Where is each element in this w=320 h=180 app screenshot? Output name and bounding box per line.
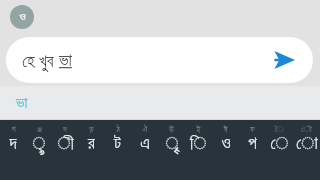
staticText: ভা (16, 96, 28, 111)
button[interactable]: ঊ (158, 120, 185, 180)
button[interactable]: ঐ (131, 120, 158, 180)
staticText: প (248, 135, 257, 152)
button[interactable]: Send (267, 43, 301, 77)
staticText: ঞ্জ (37, 126, 42, 134)
button[interactable]: Profile (10, 5, 34, 29)
button[interactable]: ৌ (293, 120, 320, 180)
staticText: ি (190, 135, 207, 152)
staticText: ঈ (223, 126, 228, 134)
staticText: ট (114, 135, 121, 152)
staticText: দ (9, 135, 17, 152)
button[interactable]: ফ (239, 120, 266, 180)
staticText: ই (196, 126, 201, 134)
staticText: এ (140, 135, 150, 152)
staticText: ৄ (165, 135, 179, 152)
staticText: ৌ (301, 126, 312, 134)
staticText: ভা (59, 52, 72, 69)
button[interactable]: শ (0, 120, 26, 180)
staticText: ী (57, 135, 74, 152)
staticText: ফ (250, 126, 255, 134)
staticText: ঐ (142, 126, 148, 134)
staticText: ও (221, 135, 231, 152)
staticText: ৈ (275, 126, 284, 134)
button[interactable]: হে খুব (6, 37, 313, 83)
staticText: হে খুব (22, 49, 59, 72)
button[interactable]: দ (52, 120, 78, 180)
button[interactable]: ই (185, 120, 212, 180)
staticText: ঊ (169, 126, 174, 134)
staticText: ঠ (116, 126, 120, 134)
staticText: ও (19, 11, 26, 23)
staticText: র (88, 135, 95, 152)
button[interactable]: ড় (78, 120, 104, 180)
button[interactable]: ঞ্জ (26, 120, 52, 180)
button[interactable]: ঠ (104, 120, 131, 180)
button[interactable]: ভা (0, 86, 44, 120)
staticText: ৢ (32, 135, 46, 152)
staticText: দ (63, 126, 67, 134)
button[interactable]: ঈ (212, 120, 239, 180)
staticText: শ (11, 126, 16, 134)
button[interactable]: ৈ (266, 120, 293, 180)
staticText: ো (296, 135, 318, 152)
staticText: ড় (89, 126, 94, 134)
staticText: ে (270, 135, 289, 152)
